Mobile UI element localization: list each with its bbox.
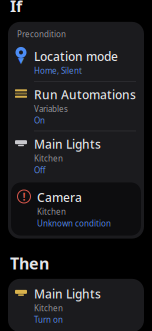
staticText: Kitchen [37, 206, 66, 217]
staticText: Then [10, 253, 49, 274]
staticText: Precondition [17, 29, 66, 39]
staticText: On [34, 115, 45, 126]
staticText: Off [34, 165, 46, 175]
staticText: Run Automations [34, 86, 136, 102]
button[interactable]: ! [11, 182, 141, 236]
staticText: Location mode [34, 48, 118, 64]
button[interactable]: Main Lights [8, 279, 144, 331]
staticText: Unknown condition [37, 218, 111, 229]
staticText: Turn on [34, 314, 63, 325]
staticText: Main Lights [34, 136, 101, 152]
staticText: Kitchen [34, 153, 63, 164]
staticText: If [10, 0, 22, 17]
staticText: Variables [34, 103, 68, 114]
staticText: Home, Silent [34, 65, 82, 76]
staticText: Kitchen [34, 303, 63, 313]
staticText: ▼ [18, 56, 24, 65]
staticText: Main Lights [34, 286, 101, 302]
staticText: Camera [37, 189, 82, 205]
staticText: ! [22, 189, 25, 204]
